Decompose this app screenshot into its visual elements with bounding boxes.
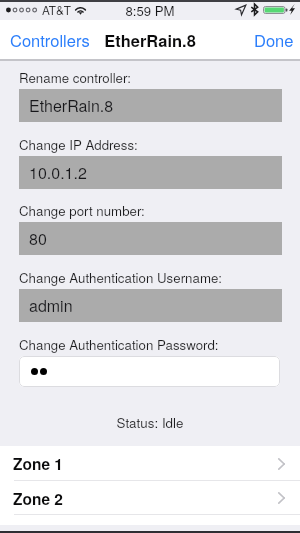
staticText: Change Authentication Password: (19, 335, 219, 354)
staticText: Change Authentication Username: (19, 268, 223, 287)
button[interactable]: Done (248, 26, 300, 54)
button[interactable]: Zone 1 (0, 446, 300, 481)
staticText: 8:59 PM (0, 1, 300, 20)
button[interactable]: 80 (19, 222, 282, 255)
button[interactable]: Controllers (0, 26, 96, 54)
button[interactable] (19, 356, 280, 387)
staticText: EtherRain.8 (29, 94, 114, 117)
staticText: Status: Idle (0, 413, 300, 432)
other: Zone 2 (278, 492, 285, 504)
staticText: Zone 1 (13, 453, 63, 475)
staticText: Change port number: (19, 201, 145, 220)
staticText: 80 (29, 227, 47, 250)
button[interactable]: 10.0.1.2 (19, 156, 282, 189)
button[interactable]: EtherRain.8 (19, 89, 282, 122)
staticText: AT&T (42, 1, 72, 18)
staticText: 10.0.1.2 (29, 161, 87, 184)
staticText: Zone 2 (13, 488, 63, 510)
button[interactable]: admin (19, 289, 282, 322)
staticText: EtherRain.8 (0, 28, 300, 52)
staticText: Change IP Address: (19, 135, 138, 154)
other: Zone 1 (278, 458, 285, 470)
button[interactable]: Zone 2 (0, 481, 300, 515)
staticText: Rename controller: (19, 68, 131, 87)
staticText: admin (29, 294, 73, 317)
